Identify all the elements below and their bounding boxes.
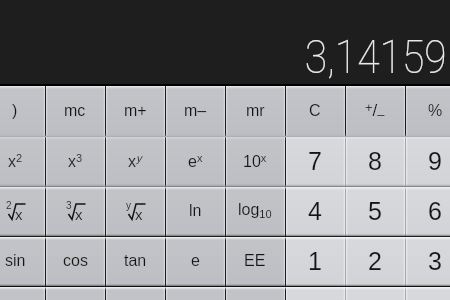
staticText: sin xyxy=(5,252,26,270)
staticText: 1 xyxy=(308,247,322,275)
staticText: cos xyxy=(63,252,88,270)
button[interactable]: mc xyxy=(45,86,105,136)
button[interactable]: Rand xyxy=(225,286,285,300)
staticText: 2 xyxy=(368,247,382,275)
staticText: +/– xyxy=(365,100,385,122)
button[interactable]: 9 xyxy=(405,136,450,186)
staticText: y xyxy=(126,200,131,211)
staticText: 7 xyxy=(308,147,322,175)
button[interactable]: 5 xyxy=(345,186,405,236)
button[interactable]: tanh xyxy=(105,286,165,300)
button[interactable]: e xyxy=(165,236,225,286)
button[interactable]: π xyxy=(165,286,225,300)
button[interactable]: . xyxy=(345,286,405,300)
button[interactable]: mr xyxy=(225,86,285,136)
button[interactable]: = xyxy=(405,286,450,300)
staticText: mc xyxy=(64,102,86,120)
staticText: 10x xyxy=(243,152,267,171)
button[interactable]: cosh xyxy=(45,286,105,300)
staticText: 3 xyxy=(66,200,72,211)
button[interactable]: y root xyxy=(105,186,165,236)
button[interactable]: 3 xyxy=(405,236,450,286)
button[interactable]: x cubed xyxy=(45,136,105,186)
button[interactable]: 7 xyxy=(285,136,345,186)
button[interactable]: 4 xyxy=(285,186,345,236)
staticText: m+ xyxy=(124,102,147,120)
staticText: 3 xyxy=(428,247,442,275)
button[interactable]: x to the y xyxy=(105,136,165,186)
staticText: ln xyxy=(189,202,202,220)
button[interactable]: sin xyxy=(0,236,45,286)
button[interactable]: EE xyxy=(225,236,285,286)
staticText: e xyxy=(191,252,200,270)
staticText: x xyxy=(15,206,23,223)
staticText: mr xyxy=(246,102,265,120)
button[interactable]: ) xyxy=(0,86,45,136)
staticText: log10 xyxy=(238,201,272,221)
staticText: 2 xyxy=(6,200,12,211)
button[interactable]: 1 xyxy=(285,236,345,286)
button[interactable]: 8 xyxy=(345,136,405,186)
button[interactable]: log base 10 xyxy=(225,186,285,236)
staticText: x2 xyxy=(8,152,23,171)
button[interactable]: % xyxy=(405,86,450,136)
staticText: EE xyxy=(244,252,266,270)
button[interactable]: 2 xyxy=(345,236,405,286)
button[interactable]: cos xyxy=(45,236,105,286)
button[interactable]: sinh xyxy=(0,286,45,300)
staticText: ) xyxy=(12,102,18,120)
button[interactable]: ln xyxy=(165,186,225,236)
button[interactable]: 6 xyxy=(405,186,450,236)
staticText: % xyxy=(428,102,443,120)
staticText: x xyxy=(135,206,143,223)
staticText: 3,14159 xyxy=(305,30,447,84)
button[interactable]: m– xyxy=(165,86,225,136)
button[interactable]: ten to the x xyxy=(225,136,285,186)
staticText: C xyxy=(309,102,321,120)
staticText: x3 xyxy=(68,152,83,171)
staticText: 9 xyxy=(428,147,442,175)
button[interactable]: C xyxy=(285,86,345,136)
button[interactable]: square root xyxy=(0,186,45,236)
staticText: 8 xyxy=(368,147,382,175)
staticText: m– xyxy=(184,102,207,120)
staticText: 4 xyxy=(308,197,322,225)
button[interactable]: x squared xyxy=(0,136,45,186)
staticText: tan xyxy=(124,252,147,270)
staticText: ex xyxy=(188,152,203,171)
staticText: 6 xyxy=(428,197,442,225)
staticText: 5 xyxy=(368,197,382,225)
button[interactable]: e to the x xyxy=(165,136,225,186)
button[interactable]: tan xyxy=(105,236,165,286)
button[interactable]: 0 xyxy=(285,286,345,300)
staticText: xy xyxy=(128,152,142,171)
button[interactable]: cube root xyxy=(45,186,105,236)
button[interactable]: m+ xyxy=(105,86,165,136)
button[interactable]: plus minus xyxy=(345,86,405,136)
staticText: x xyxy=(75,206,83,223)
